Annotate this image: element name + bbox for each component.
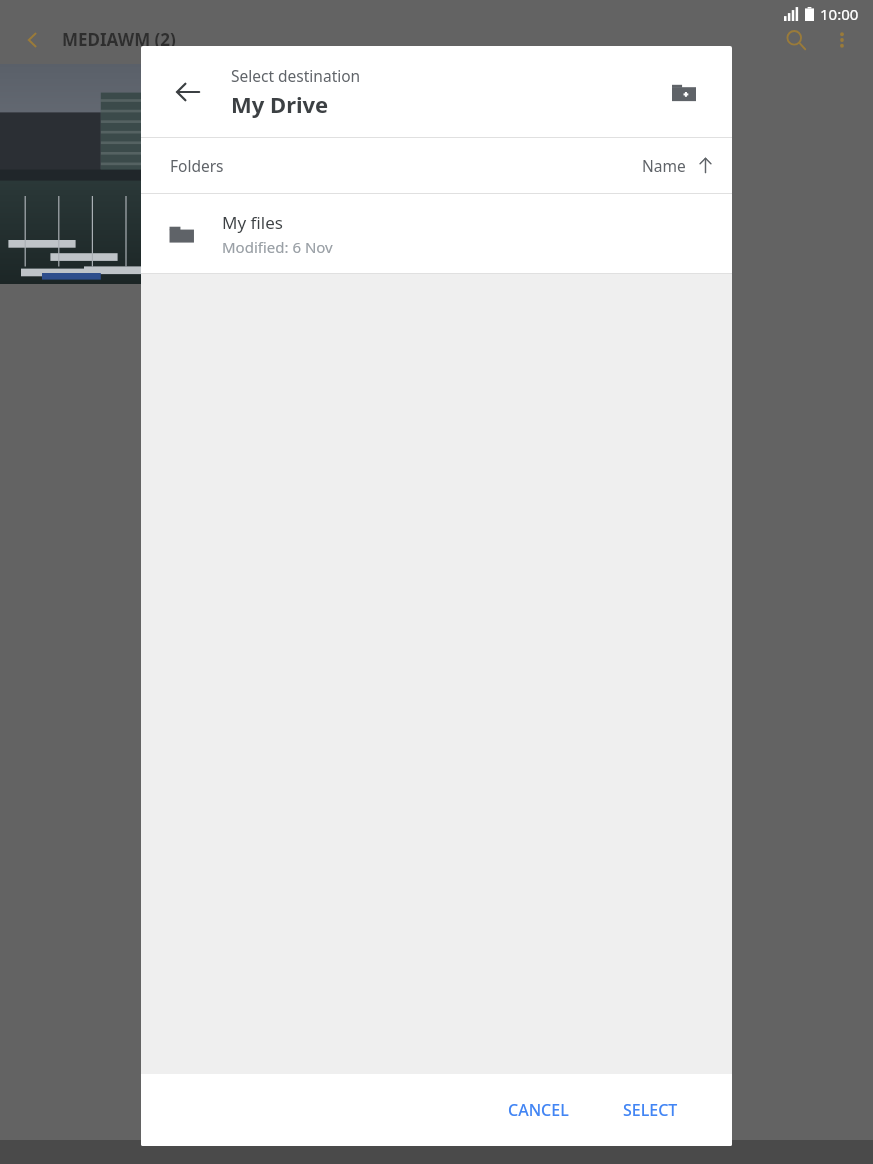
- button[interactable]: My files: [141, 194, 732, 273]
- staticText: SELECT: [623, 1099, 678, 1121]
- staticText: My files: [222, 211, 283, 234]
- button[interactable]: CANCEL: [492, 1089, 585, 1131]
- staticText: Folders: [170, 155, 224, 176]
- staticText: MEDIAWM (2): [62, 28, 176, 51]
- button[interactable]: More options: [833, 31, 851, 49]
- staticText: CANCEL: [508, 1099, 569, 1121]
- staticText: My Drive: [231, 89, 329, 119]
- other: Sort ascending: [697, 157, 714, 174]
- staticText: Name: [642, 155, 686, 176]
- button[interactable]: Navigate up: [171, 75, 205, 109]
- staticText: Modified: 6 Nov: [222, 237, 333, 257]
- button[interactable]: New folder: [664, 72, 704, 112]
- button[interactable]: Search: [785, 29, 807, 51]
- staticText: Select destination: [231, 65, 361, 86]
- staticText: 10:00: [820, 4, 859, 24]
- button[interactable]: SELECT: [607, 1089, 694, 1131]
- button[interactable]: Name: [642, 155, 714, 176]
- button[interactable]: Back: [22, 30, 42, 50]
